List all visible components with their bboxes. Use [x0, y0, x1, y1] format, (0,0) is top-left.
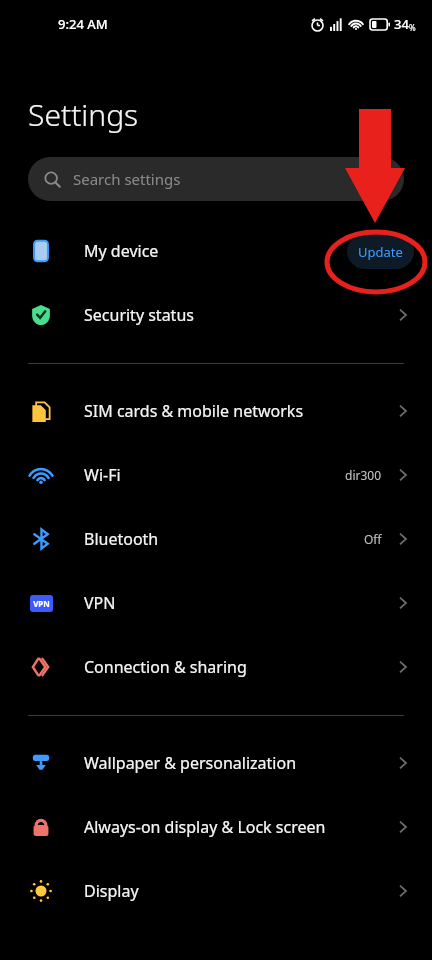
staticText: SIM cards & mobile networks — [84, 400, 392, 422]
button[interactable]: Always-on display & Lock screen — [0, 795, 432, 859]
staticText: Bluetooth — [84, 528, 364, 550]
button[interactable]: Security status — [0, 283, 432, 347]
button[interactable]: Wi-Fi — [0, 443, 432, 507]
button[interactable]: Display — [0, 859, 432, 923]
staticText: Wi-Fi — [84, 464, 345, 486]
staticText: My device — [84, 240, 347, 262]
button[interactable]: Bluetooth — [0, 507, 432, 571]
staticText: dir300 — [345, 467, 382, 483]
staticText: Search settings — [73, 169, 181, 189]
button[interactable]: SIM cards & mobile networks — [0, 379, 432, 443]
staticText: Off — [364, 531, 382, 547]
staticText: Connection & sharing — [84, 656, 392, 678]
staticText: Always-on display & Lock screen — [84, 816, 392, 838]
button[interactable]: Wallpaper & personalization — [0, 731, 432, 795]
staticText: 34 — [394, 15, 409, 33]
button[interactable]: VPN — [0, 571, 432, 635]
staticText: Wallpaper & personalization — [84, 752, 392, 774]
staticText: Update — [358, 243, 403, 261]
staticText: Settings — [28, 94, 139, 135]
staticText: VPN — [84, 592, 392, 614]
button[interactable]: Search settings — [28, 157, 404, 201]
staticText: Security status — [84, 304, 392, 326]
button[interactable]: My device — [0, 219, 432, 283]
button[interactable]: Connection & sharing — [0, 635, 432, 699]
staticText: VPN — [33, 598, 50, 609]
staticText: 9:24 AM — [58, 15, 108, 33]
button[interactable]: Update — [347, 234, 414, 269]
staticText: Display — [84, 880, 392, 902]
staticText: % — [409, 22, 416, 33]
